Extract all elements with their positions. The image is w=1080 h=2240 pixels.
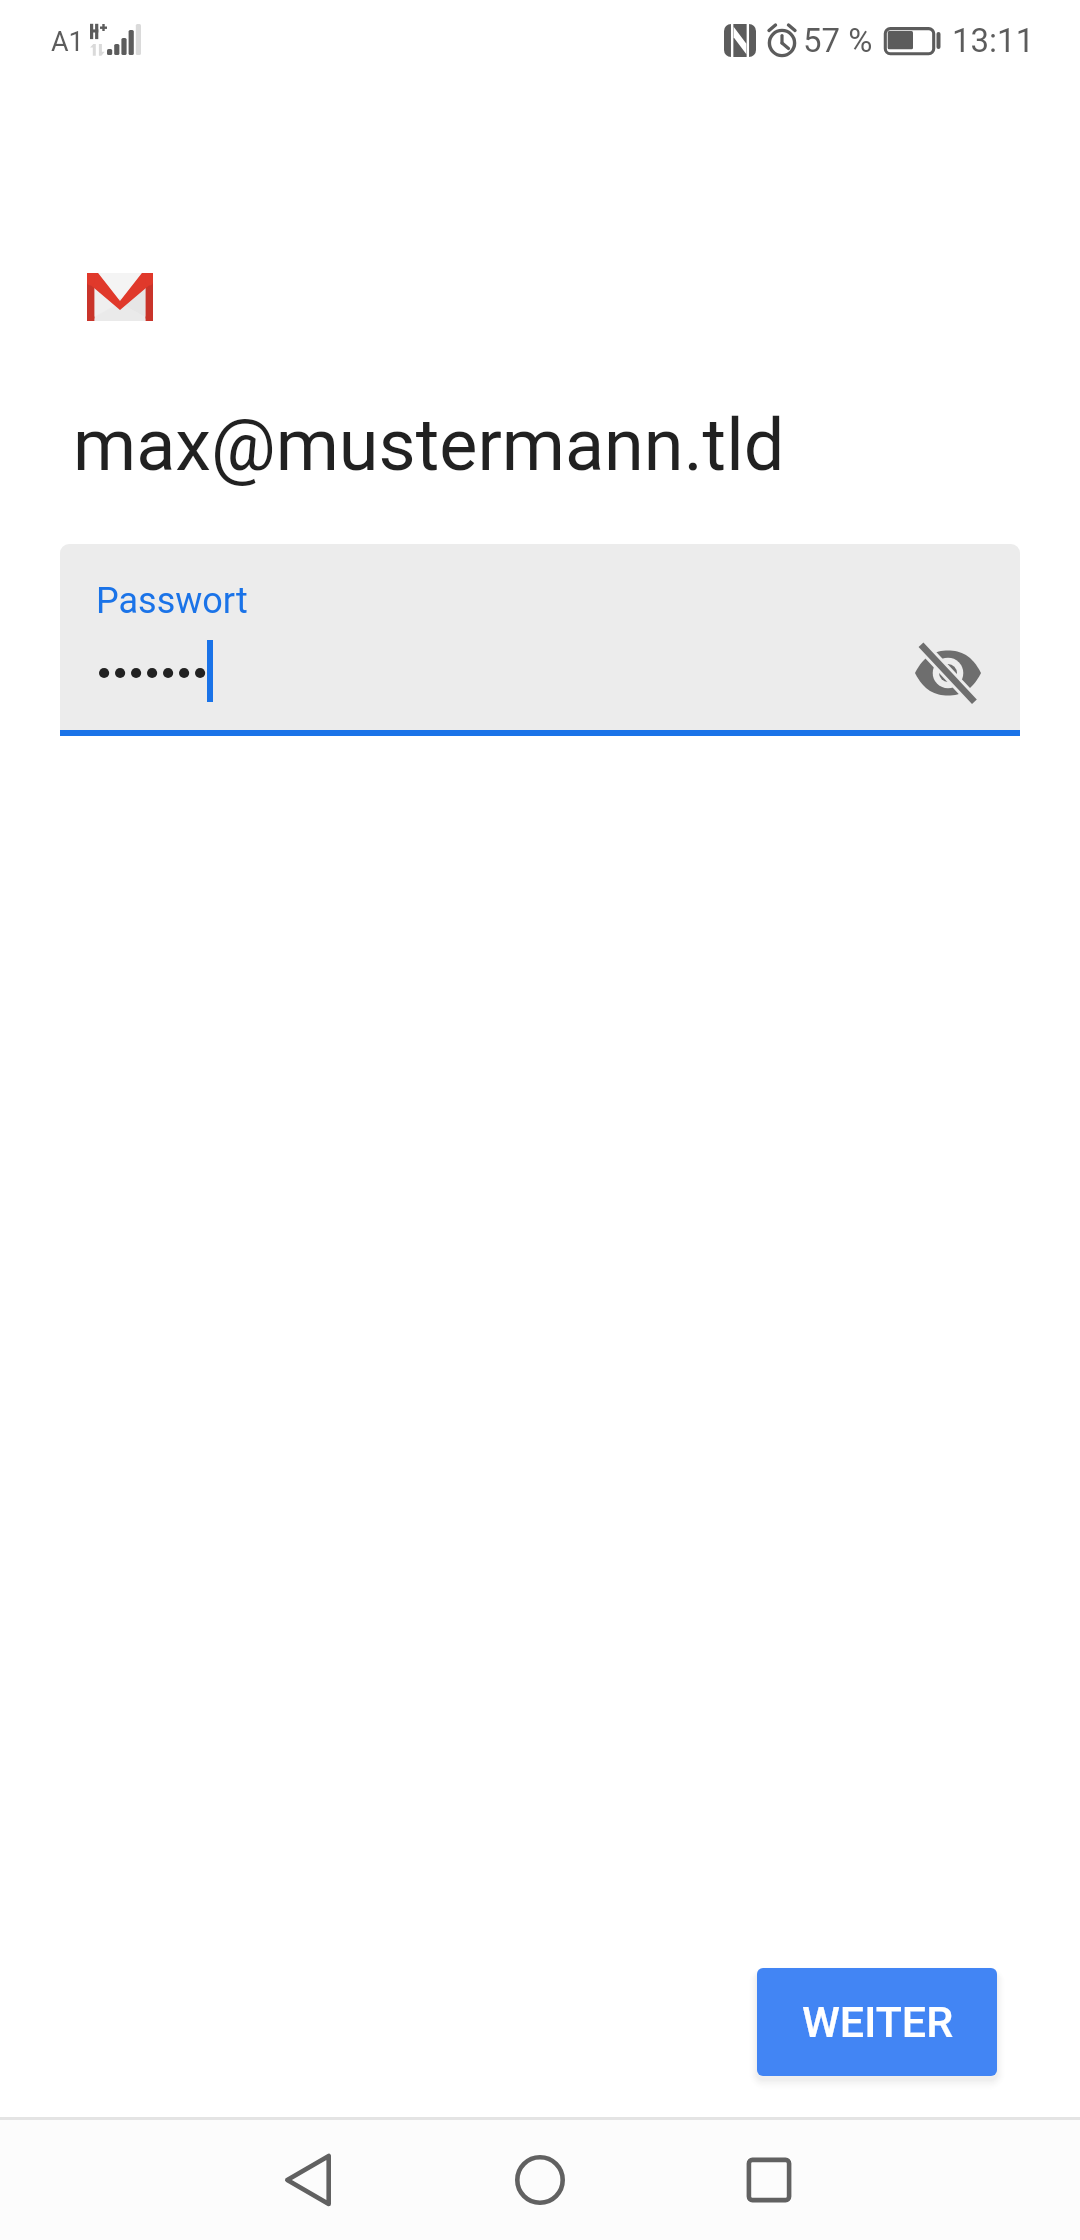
staticText: WEITER	[802, 1997, 953, 2047]
button[interactable]: Letzte Apps	[709, 2120, 829, 2240]
staticText: Passwort	[96, 580, 248, 622]
staticText: 13:11	[952, 21, 1035, 60]
button[interactable]: Startbildschirm	[480, 2120, 600, 2240]
staticText: 57 %	[803, 21, 873, 60]
staticText: A1	[51, 26, 84, 58]
button[interactable]: WEITER	[757, 1968, 997, 2076]
button[interactable]: Zurück	[248, 2120, 368, 2240]
button[interactable]	[60, 544, 1020, 730]
button[interactable]: Passwort anzeigen	[912, 637, 984, 709]
staticText: max@mustermann.tld	[73, 403, 785, 487]
